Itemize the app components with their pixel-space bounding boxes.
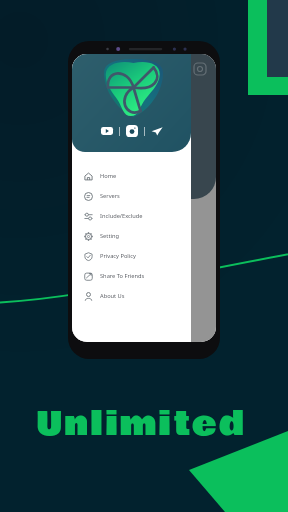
staticText: Home <box>100 172 117 180</box>
button[interactable]: Privacy Policy <box>72 246 191 266</box>
button[interactable]: YouTube <box>101 125 113 137</box>
staticText: Share To Friends <box>100 272 145 280</box>
button[interactable]: Servers <box>72 186 191 206</box>
staticText: About Us <box>100 292 125 300</box>
staticText: Setting <box>100 232 119 240</box>
staticText: Unlimited <box>36 398 247 450</box>
button[interactable]: Telegram <box>151 125 163 137</box>
button[interactable]: About Us <box>72 286 191 306</box>
button[interactable]: Instagram <box>126 125 138 137</box>
staticText: Include/Exclude <box>100 212 143 220</box>
staticText: Servers <box>100 192 120 200</box>
button[interactable]: Share To Friends <box>72 266 191 286</box>
button[interactable]: Include/Exclude <box>72 206 191 226</box>
button[interactable]: Home <box>72 166 191 186</box>
staticText: Privacy Policy <box>100 252 136 260</box>
button[interactable]: Setting <box>72 226 191 246</box>
